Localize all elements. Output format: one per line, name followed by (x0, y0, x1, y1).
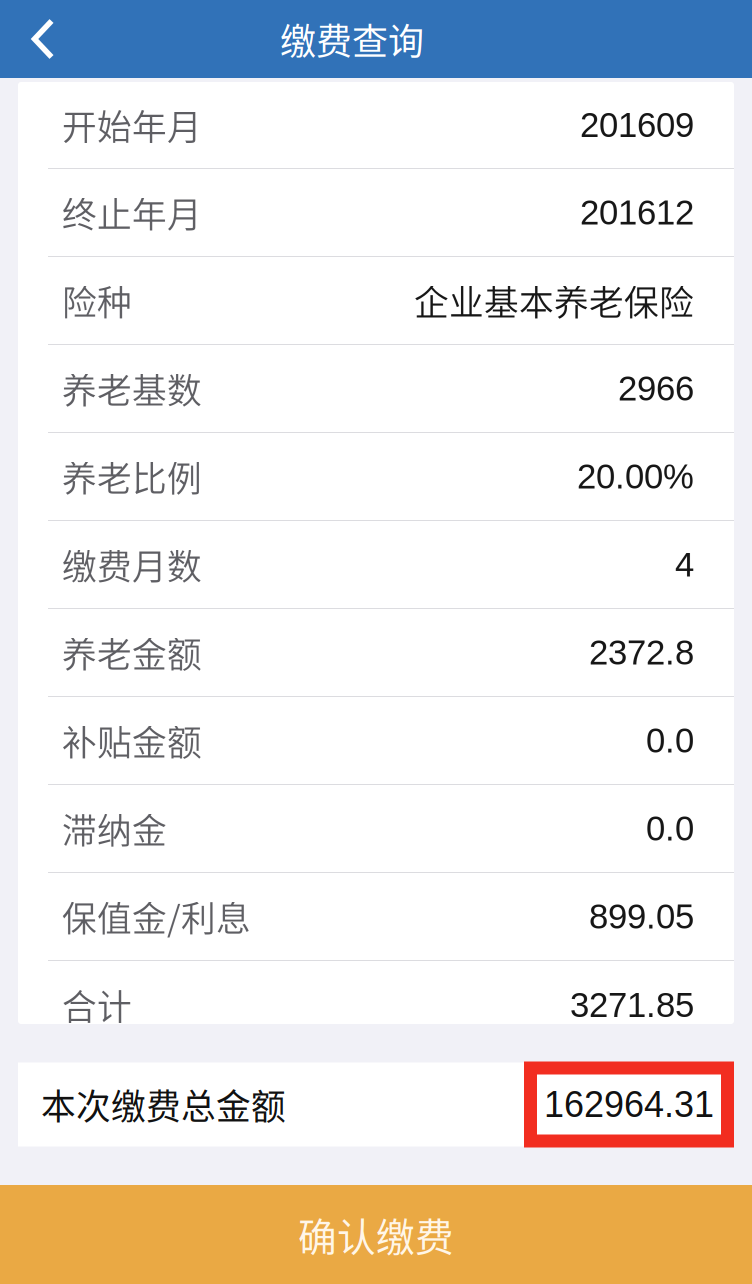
staticText: 缴费月数 (62, 539, 202, 590)
staticText: 合计 (62, 980, 132, 1030)
staticText: 保值金/利息 (62, 891, 251, 942)
staticText: 899.05 (589, 897, 694, 936)
staticText: 开始年月 (62, 100, 202, 150)
staticText: 3271.85 (570, 986, 694, 1024)
staticText: 201612 (580, 193, 694, 232)
staticText: 162964.31 (544, 1084, 714, 1125)
staticText: 2372.8 (589, 633, 694, 672)
staticText: 本次缴费总金额 (41, 1079, 286, 1130)
staticText: 20.00% (577, 457, 694, 496)
button[interactable]: 确认缴费 (0, 1185, 752, 1284)
staticText: 养老比例 (62, 451, 202, 502)
staticText: 险种 (62, 275, 132, 326)
staticText: 0.0 (646, 809, 694, 848)
staticText: 终止年月 (62, 187, 202, 238)
staticText: 养老基数 (62, 363, 202, 414)
staticText: 养老金额 (62, 627, 202, 678)
staticText: 4 (675, 545, 694, 584)
staticText: 201609 (580, 106, 694, 144)
staticText: 补贴金额 (62, 715, 202, 766)
staticText: 0.0 (646, 721, 694, 760)
button[interactable]: Back (0, 0, 86, 78)
staticText: 缴费查询 (280, 13, 424, 65)
staticText: 企业基本养老保险 (414, 275, 694, 326)
staticText: 滞纳金 (62, 803, 167, 854)
staticText: 2966 (618, 369, 694, 408)
staticText: 确认缴费 (298, 1206, 454, 1262)
